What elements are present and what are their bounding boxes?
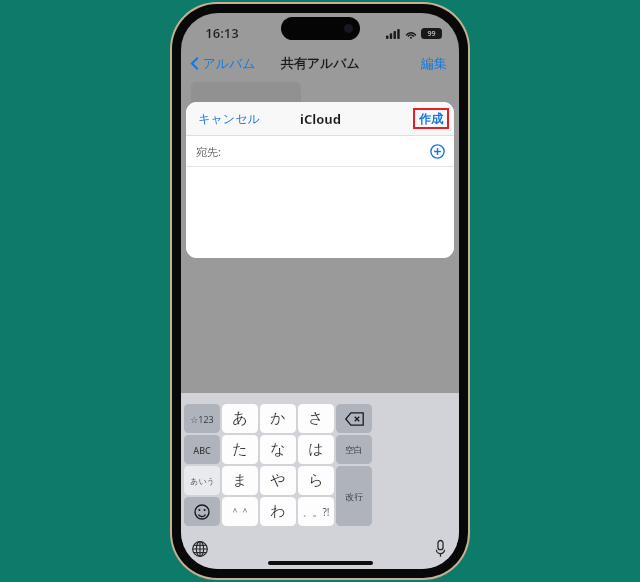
staticText: 改行 — [345, 491, 363, 502]
button[interactable]: 宛先: — [186, 136, 454, 166]
staticText: 99 — [427, 29, 436, 39]
button[interactable]: ま — [222, 466, 258, 495]
button[interactable]: は — [298, 435, 334, 464]
other: 削除 — [345, 412, 364, 426]
button[interactable]: な — [260, 435, 296, 464]
button[interactable]: ☆123 — [184, 404, 220, 433]
staticText: 16:13 — [205, 24, 239, 42]
button[interactable]: ＾＾ — [222, 497, 258, 526]
staticText: さ — [308, 409, 324, 428]
button[interactable]: あいう — [184, 466, 220, 495]
staticText: た — [232, 440, 248, 459]
staticText: 共有アルバム — [280, 55, 360, 71]
staticText: や — [270, 471, 286, 490]
staticText: 、。?! — [302, 505, 330, 519]
staticText: ABC — [193, 444, 211, 456]
button[interactable]: 編集 — [419, 53, 449, 73]
other: 絵文字 — [194, 504, 210, 520]
staticText: アルバム — [202, 55, 256, 71]
staticText: ☆123 — [190, 413, 214, 425]
button[interactable]: ら — [298, 466, 334, 495]
staticText: ら — [308, 471, 324, 490]
button[interactable]: 音声入力 — [435, 540, 446, 557]
staticText: 宛先: — [196, 144, 221, 159]
button[interactable]: 言語を切り替え — [192, 541, 208, 557]
staticText: は — [308, 440, 324, 459]
button[interactable]: さ — [298, 404, 334, 433]
staticText: iCloud — [300, 110, 341, 128]
button[interactable]: 改行 — [336, 466, 372, 526]
button[interactable]: か — [260, 404, 296, 433]
button[interactable]: 絵文字 — [184, 497, 220, 526]
button[interactable]: わ — [260, 497, 296, 526]
button[interactable]: キャンセル — [195, 108, 263, 129]
staticText: 作成 — [419, 111, 443, 126]
button[interactable]: 、。?! — [298, 497, 334, 526]
button[interactable]: 削除 — [336, 404, 372, 433]
staticText: ＾＾ — [230, 505, 250, 518]
button[interactable]: あ — [222, 404, 258, 433]
button[interactable]: ABC — [184, 435, 220, 464]
staticText: あいう — [190, 476, 215, 486]
button[interactable]: た — [222, 435, 258, 464]
staticText: 空白 — [345, 444, 363, 455]
staticText: あ — [232, 409, 248, 428]
staticText: わ — [270, 502, 286, 521]
button[interactable]: 空白 — [336, 435, 372, 464]
staticText: ま — [232, 471, 248, 490]
button[interactable]: や — [260, 466, 296, 495]
button[interactable]: 連絡先を追加 — [430, 144, 445, 159]
button[interactable]: 作成 — [413, 108, 449, 129]
staticText: か — [270, 409, 286, 428]
staticText: な — [270, 440, 286, 459]
button[interactable]: アルバム — [189, 52, 258, 74]
